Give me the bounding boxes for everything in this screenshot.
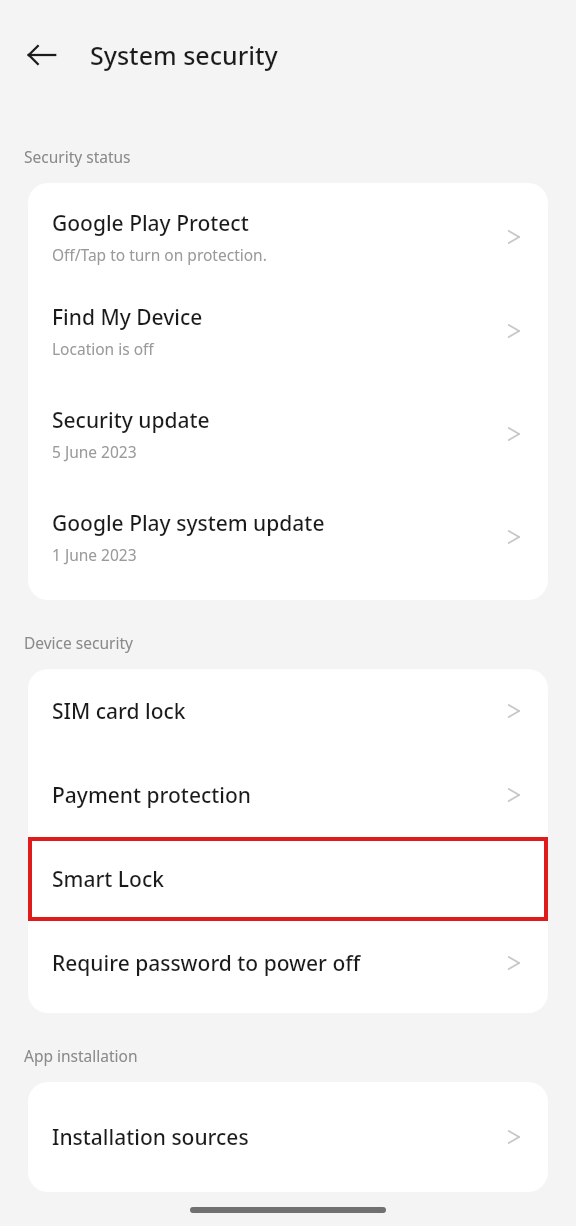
other: Google Play Protect [502, 224, 528, 250]
other: SIM card lock [502, 698, 528, 724]
staticText: 1 June 2023 [52, 544, 137, 565]
staticText: Google Play Protect [52, 209, 249, 238]
staticText: Security update [52, 406, 210, 435]
other: Google Play system update [502, 524, 528, 550]
other: Security update [502, 421, 528, 447]
button[interactable]: Smart Lock [32, 841, 544, 917]
other: Payment protection [502, 782, 528, 808]
staticText: SIM card lock [52, 697, 186, 726]
staticText: Location is off [52, 338, 154, 359]
other: Installation sources [502, 1124, 528, 1150]
button[interactable]: Find My Device [28, 279, 548, 382]
staticText: Off/Tap to turn on protection. [52, 244, 267, 265]
staticText: System security [90, 38, 278, 72]
staticText: 5 June 2023 [52, 441, 137, 462]
staticText: Require password to power off [52, 949, 361, 978]
staticText: Smart Lock [52, 865, 164, 894]
staticText: Device security [24, 632, 133, 653]
staticText: Payment protection [52, 781, 251, 810]
other: Find My Device [502, 318, 528, 344]
staticText: Find My Device [52, 303, 203, 332]
button[interactable]: Google Play system update [28, 485, 548, 588]
staticText: Security status [24, 146, 131, 167]
button[interactable]: Payment protection [28, 753, 548, 837]
button[interactable]: SIM card lock [28, 669, 548, 753]
button[interactable]: Installation sources [28, 1082, 548, 1192]
staticText: App installation [24, 1045, 138, 1066]
button[interactable]: Back [20, 33, 64, 77]
button[interactable]: Security update [28, 382, 548, 485]
staticText: Google Play system update [52, 509, 325, 538]
button[interactable]: Google Play Protect [28, 195, 548, 279]
other: Require password to power off [502, 950, 528, 976]
staticText: Installation sources [52, 1123, 249, 1152]
button[interactable]: Require password to power off [28, 921, 548, 1005]
